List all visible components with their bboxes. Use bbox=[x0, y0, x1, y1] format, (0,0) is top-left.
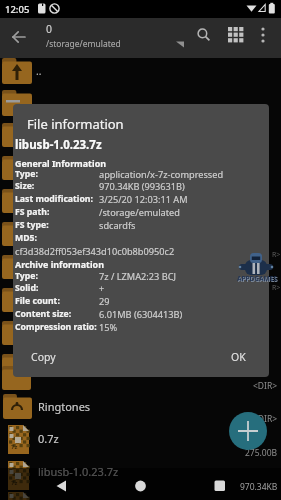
staticText: application/x-7z-compressed bbox=[99, 168, 224, 181]
staticText: <DIR> bbox=[253, 413, 278, 425]
button[interactable] bbox=[6, 24, 32, 50]
staticText: Last modification: bbox=[15, 193, 93, 205]
staticText: 6.01MB (6304413B) bbox=[99, 308, 183, 321]
button[interactable] bbox=[224, 23, 248, 47]
staticText: 7z bbox=[11, 479, 18, 487]
staticText: 15% bbox=[99, 321, 118, 334]
staticText: 7z bbox=[11, 443, 18, 451]
staticText: Content size: bbox=[15, 308, 72, 320]
staticText: 0.7z bbox=[38, 431, 59, 446]
staticText: APPDGAMES bbox=[237, 274, 277, 283]
staticText: OK bbox=[231, 350, 246, 364]
staticText: Size: bbox=[15, 180, 35, 192]
staticText: cf3d38d2ff053ef343d10c0b8b0950c2 bbox=[15, 245, 175, 258]
button[interactable] bbox=[48, 475, 74, 497]
staticText: MD5: bbox=[15, 232, 37, 244]
button[interactable]: Copy bbox=[31, 344, 81, 370]
staticText: General Information bbox=[15, 157, 106, 169]
button[interactable] bbox=[206, 475, 232, 497]
button[interactable] bbox=[128, 475, 154, 497]
staticText: 970.34KB (993631B) bbox=[99, 180, 185, 193]
staticText: FS type: bbox=[15, 219, 49, 231]
button[interactable]: OK bbox=[218, 344, 258, 370]
button[interactable] bbox=[0, 56, 281, 88]
staticText: Type: bbox=[15, 270, 38, 282]
staticText: /storage/emulated bbox=[99, 206, 180, 219]
button[interactable] bbox=[252, 23, 274, 47]
staticText: Solid: bbox=[15, 282, 39, 294]
staticText: 29 bbox=[99, 295, 110, 308]
staticText: <DIR> bbox=[253, 380, 278, 392]
staticText: 12:05 bbox=[5, 3, 30, 16]
staticText: FS path: bbox=[15, 206, 50, 218]
button[interactable] bbox=[229, 412, 267, 450]
staticText: sdcardfs bbox=[99, 219, 136, 232]
staticText: Ringtones bbox=[38, 399, 91, 414]
staticText: Copy bbox=[31, 350, 56, 364]
staticText: R> bbox=[272, 250, 281, 260]
staticText: 7z / LZMA2:23 BCJ bbox=[99, 270, 176, 283]
staticText: File count: bbox=[15, 295, 60, 307]
button[interactable] bbox=[192, 23, 216, 47]
staticText: .. bbox=[36, 64, 42, 78]
staticText: 0 bbox=[46, 22, 53, 36]
button[interactable] bbox=[0, 392, 281, 425]
staticText: APPDGAMES bbox=[238, 275, 278, 284]
staticText: R> bbox=[272, 283, 281, 293]
staticText: + bbox=[99, 282, 105, 295]
staticText: File information bbox=[27, 115, 124, 133]
button[interactable]: /storage/emulated bbox=[46, 36, 121, 52]
staticText: 970.34KB bbox=[240, 481, 278, 493]
staticText: libusb-1.0.23.7z bbox=[38, 464, 119, 479]
staticText: Type: bbox=[15, 168, 38, 180]
staticText: /storage/emulated bbox=[46, 38, 121, 50]
staticText: 275.00B bbox=[245, 447, 278, 459]
staticText: Archive information bbox=[15, 258, 104, 270]
staticText: 3/25/20 12:03:11 AM bbox=[99, 193, 188, 206]
button[interactable] bbox=[0, 458, 281, 491]
staticText: Compression ratio: bbox=[15, 321, 97, 333]
staticText: libusb-1.0.23.7z bbox=[15, 137, 102, 153]
button[interactable] bbox=[0, 425, 281, 458]
